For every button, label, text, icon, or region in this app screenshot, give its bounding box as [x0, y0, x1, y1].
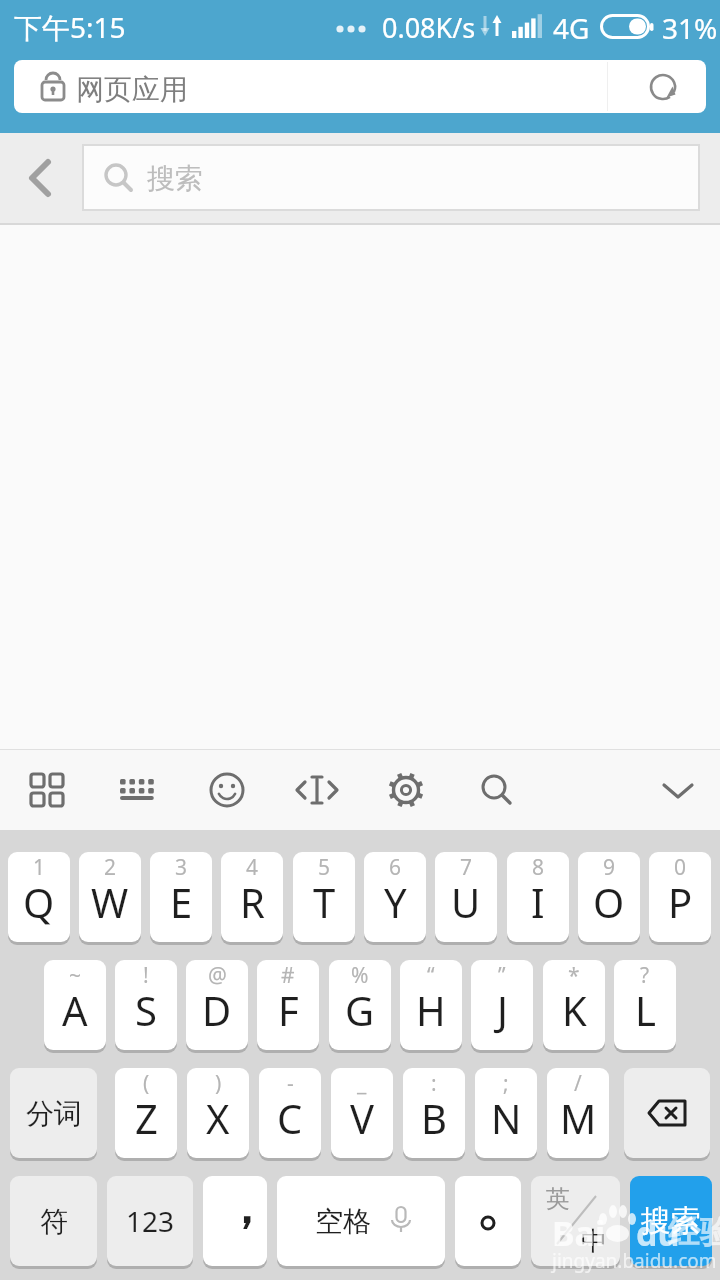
button[interactable] — [455, 1176, 521, 1266]
staticText: _ — [357, 1069, 367, 1098]
staticText: 4G — [553, 9, 590, 47]
staticText: 搜索 — [147, 161, 203, 196]
button[interactable]: % — [329, 960, 391, 1050]
staticText: - — [287, 1069, 294, 1098]
staticText: J — [497, 983, 508, 1037]
button[interactable]: ? — [614, 960, 676, 1050]
button[interactable]: ~ — [44, 960, 106, 1050]
staticText: du — [636, 1210, 680, 1256]
button[interactable]: * — [543, 960, 605, 1050]
staticText: 31% — [662, 9, 718, 47]
staticText: Y — [384, 875, 407, 929]
button[interactable]: ” — [471, 960, 533, 1050]
staticText: ) — [215, 1069, 222, 1098]
button[interactable] — [207, 770, 247, 810]
staticText: N — [491, 1091, 522, 1145]
staticText: 分词 — [26, 1096, 82, 1131]
staticText: 2 — [104, 853, 117, 882]
button[interactable] — [624, 1068, 710, 1158]
staticText: Q — [23, 875, 55, 929]
staticText: / — [574, 1069, 582, 1098]
button[interactable]: 2 — [79, 852, 141, 942]
button[interactable]: 123 — [107, 1176, 193, 1266]
staticText: U — [451, 875, 481, 929]
button[interactable] — [27, 770, 67, 810]
button[interactable]: # — [257, 960, 319, 1050]
staticText: 空格 — [315, 1204, 371, 1239]
button[interactable]: _ — [331, 1068, 393, 1158]
button[interactable]: / — [547, 1068, 609, 1158]
staticText: 4 — [246, 853, 259, 882]
button[interactable] — [477, 770, 517, 810]
staticText: 7 — [460, 853, 473, 882]
staticText: Bai — [552, 1210, 606, 1256]
staticText: O — [593, 875, 625, 929]
staticText: I — [531, 875, 545, 929]
staticText: ( — [143, 1069, 150, 1098]
staticText: ” — [498, 961, 506, 990]
button[interactable]: 7 — [435, 852, 497, 942]
staticText: 经验 — [668, 1212, 720, 1252]
button[interactable]: 英 — [531, 1176, 620, 1266]
button[interactable]: ! — [115, 960, 177, 1050]
staticText: P — [668, 875, 693, 929]
button[interactable]: 分词 — [10, 1068, 97, 1158]
staticText: B — [421, 1091, 447, 1145]
staticText: A — [62, 983, 88, 1037]
button[interactable]: @ — [186, 960, 248, 1050]
staticText: D — [202, 983, 232, 1037]
staticText: K — [562, 983, 587, 1037]
staticText: : — [431, 1069, 437, 1098]
staticText: 8 — [532, 853, 545, 882]
staticText: 1 — [33, 853, 46, 882]
staticText: W — [91, 875, 129, 929]
button[interactable] — [648, 72, 678, 102]
button[interactable] — [22, 158, 62, 198]
button[interactable] — [386, 770, 426, 810]
staticText: R — [240, 875, 265, 929]
staticText: 0 — [674, 853, 687, 882]
button[interactable]: 搜索 — [630, 1176, 712, 1266]
button[interactable]: 1 — [8, 852, 70, 942]
staticText: ， — [224, 1181, 268, 1236]
staticText: G — [345, 983, 375, 1037]
button[interactable]: 9 — [578, 852, 640, 942]
staticText: ! — [143, 961, 149, 990]
staticText: jingyan.baidu.com — [552, 1248, 717, 1274]
staticText: 中 — [581, 1225, 607, 1258]
button[interactable] — [117, 770, 157, 810]
button[interactable]: 搜索 — [83, 145, 699, 210]
staticText: 9 — [603, 853, 616, 882]
button[interactable]: 6 — [364, 852, 426, 942]
button[interactable]: : — [403, 1068, 465, 1158]
staticText: M — [560, 1091, 597, 1145]
staticText: 123 — [126, 1202, 175, 1240]
staticText: * — [568, 961, 580, 990]
button[interactable]: ; — [475, 1068, 537, 1158]
button[interactable]: 空格 — [277, 1176, 445, 1266]
button[interactable]: 4 — [221, 852, 283, 942]
staticText: ~ — [69, 961, 82, 990]
button[interactable]: 0 — [649, 852, 711, 942]
button[interactable] — [658, 770, 698, 810]
staticText: 英 — [546, 1184, 570, 1214]
staticText: T — [313, 875, 336, 929]
staticText: X — [206, 1091, 230, 1145]
button[interactable]: - — [259, 1068, 321, 1158]
button[interactable]: ( — [115, 1068, 177, 1158]
staticText: 5 — [318, 853, 331, 882]
button[interactable]: ) — [187, 1068, 249, 1158]
staticText: 0.08K/s — [382, 9, 476, 46]
staticText: 网页应用 — [76, 72, 188, 107]
button[interactable]: 8 — [507, 852, 569, 942]
staticText: F — [278, 983, 299, 1037]
button[interactable]: 3 — [150, 852, 212, 942]
button[interactable]: 5 — [293, 852, 355, 942]
staticText: 符 — [40, 1204, 68, 1239]
button[interactable]: 网页应用 — [14, 60, 706, 113]
staticText: 搜索 — [641, 1202, 701, 1240]
button[interactable]: “ — [400, 960, 462, 1050]
button[interactable]: 符 — [10, 1176, 97, 1266]
button[interactable] — [295, 770, 339, 810]
button[interactable]: ， — [203, 1176, 267, 1266]
